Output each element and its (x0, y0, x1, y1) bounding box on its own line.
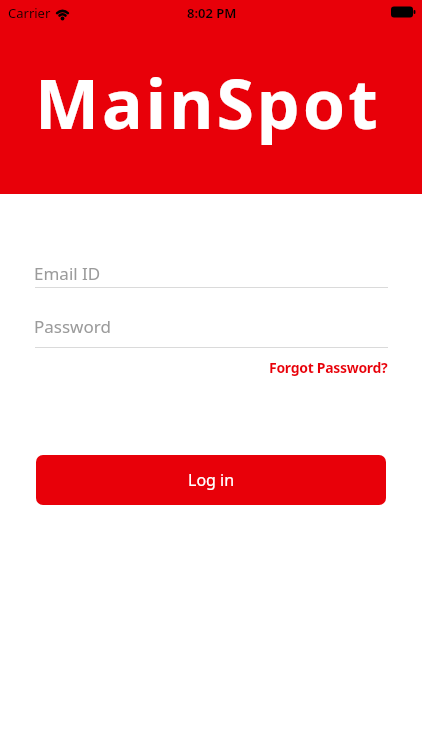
button[interactable]: Log in (36, 455, 386, 505)
staticText: Log in (188, 469, 235, 491)
staticText: Password (34, 315, 111, 338)
staticText: Carrier (8, 4, 51, 22)
staticText: 8:02 PM (187, 4, 237, 22)
button[interactable]: Forgot Password? (269, 358, 388, 377)
button[interactable]: Password (34, 315, 388, 349)
staticText: Email ID (34, 262, 101, 285)
staticText: Forgot Password? (269, 358, 388, 377)
staticText: MainSpot (35, 56, 381, 149)
button[interactable]: Email ID (34, 258, 388, 289)
